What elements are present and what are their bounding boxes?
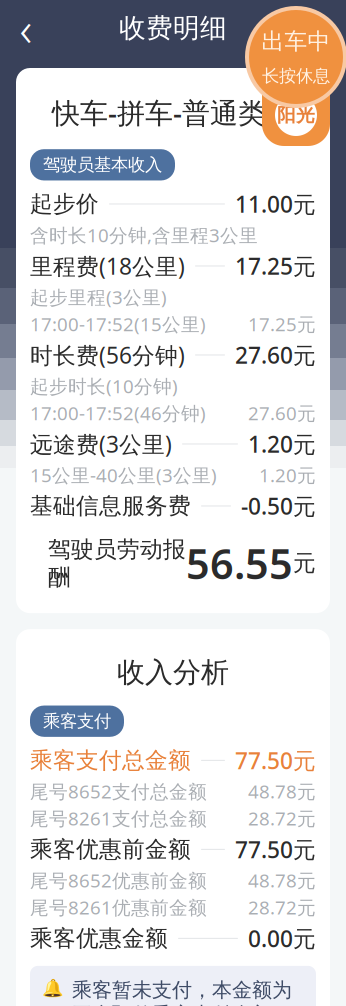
staticText: 起步价	[30, 190, 99, 218]
staticText: 元	[293, 549, 316, 577]
staticText: 17.25元	[235, 251, 316, 281]
staticText: 56.55	[186, 536, 293, 591]
staticText: 里程费(18公里)	[30, 251, 185, 281]
staticText: 48.78元	[248, 868, 316, 893]
staticText: 27.60元	[248, 401, 316, 425]
staticText: 0.00元	[248, 923, 316, 953]
staticText: 1.20元	[248, 429, 316, 459]
staticText: 15公里-40公里(3公里)	[30, 463, 217, 487]
staticText: 尾号8261优惠前金额	[30, 895, 207, 920]
staticText: 77.50元	[235, 834, 316, 864]
staticText: 乘客优惠前金额	[30, 835, 191, 863]
staticText: 驾驶员基本收入	[43, 154, 162, 175]
staticText: 阳光	[277, 103, 315, 126]
staticText: 27.60元	[235, 340, 316, 370]
staticText: 时长费(56分钟)	[30, 340, 185, 370]
staticText: 乘客支付总金额	[30, 746, 191, 774]
staticText: 28.72元	[248, 806, 316, 831]
staticText: 17:00-17:52(15公里)	[30, 312, 206, 336]
staticText: 乘客暂未支付，本金额为平台预估乘客支付金额，实际以支付后金额为准	[72, 978, 292, 1006]
staticText: 起步时长(10分钟)	[30, 374, 178, 398]
staticText: 收入分析	[117, 655, 229, 690]
staticText: 起步里程(3公里)	[30, 285, 167, 309]
staticText: 长按休息	[262, 65, 330, 87]
staticText: 🔔	[42, 978, 64, 998]
staticText: 驾驶员劳动报酬	[48, 535, 186, 591]
staticText: 含时长10分钟,含里程3公里	[30, 223, 258, 247]
button[interactable]: 出车中，长按休息	[246, 8, 346, 146]
staticText: 收费明细	[119, 12, 227, 44]
staticText: 尾号8652优惠前金额	[30, 868, 207, 893]
staticText: 28.72元	[248, 895, 316, 920]
staticText: 远途费(3公里)	[30, 429, 172, 459]
staticText: 乘客支付	[43, 710, 111, 732]
staticText: 快车-拼车-普通类型	[52, 94, 294, 131]
staticText: 尾号8652支付总金额	[30, 779, 207, 804]
staticText: 出车中	[261, 27, 330, 55]
staticText: 77.50元	[235, 745, 316, 775]
staticText: 48.78元	[248, 779, 316, 804]
staticText: ‹	[19, 0, 32, 60]
staticText: 17:00-17:52(46分钟)	[30, 401, 206, 425]
staticText: 1.20元	[259, 463, 316, 487]
staticText: 17.25元	[248, 312, 316, 336]
button[interactable]: Back	[4, 6, 48, 50]
staticText: -0.50元	[241, 491, 316, 521]
staticText: 基础信息服务费	[30, 492, 191, 520]
staticText: 尾号8261支付总金额	[30, 806, 207, 831]
staticText: 11.00元	[235, 189, 316, 219]
staticText: 乘客优惠金额	[30, 924, 168, 952]
